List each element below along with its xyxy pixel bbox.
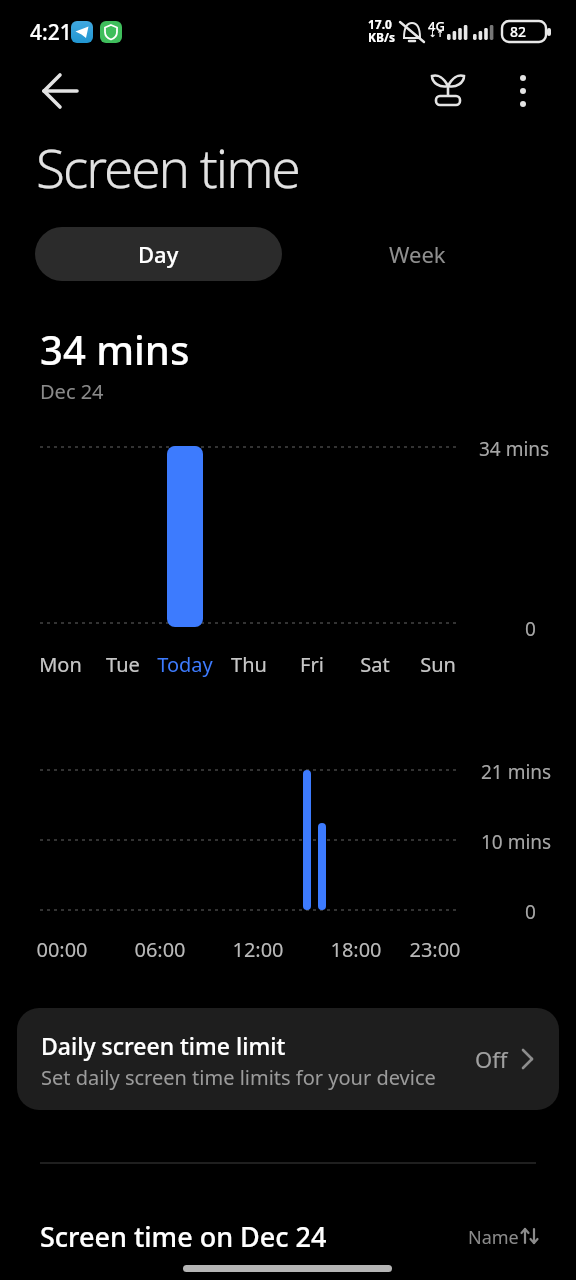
staticText: 4:21 — [30, 18, 72, 47]
button[interactable]: Week — [352, 227, 482, 281]
staticText: 00:00 — [36, 936, 88, 963]
staticText: 34 mins — [479, 436, 550, 462]
staticText: ↓↑ — [429, 29, 445, 39]
staticText: 06:00 — [134, 936, 186, 963]
staticText: Screen time — [36, 131, 299, 203]
button[interactable]: Name — [455, 1220, 547, 1252]
staticText: Sun — [420, 651, 456, 678]
staticText: Week — [389, 239, 446, 269]
button[interactable] — [30, 70, 74, 114]
staticText: 21 mins — [481, 759, 552, 785]
staticText: Name — [468, 1225, 519, 1250]
staticText: KB/s — [368, 29, 395, 45]
staticText: Day — [138, 239, 179, 269]
staticText: Off — [475, 1044, 508, 1074]
staticText: 4G — [428, 17, 445, 35]
staticText: Sat — [360, 651, 390, 678]
button[interactable] — [425, 68, 471, 114]
staticText: 18:00 — [330, 936, 382, 963]
staticText: Daily screen time limit — [41, 1030, 286, 1061]
button[interactable] — [500, 68, 546, 114]
staticText: 23:00 — [409, 936, 461, 963]
staticText: 82 — [510, 22, 527, 41]
staticText: 17.0 — [368, 16, 392, 32]
staticText: Screen time on Dec 24 — [40, 1218, 327, 1255]
staticText: Dec 24 — [40, 378, 104, 405]
staticText: Set daily screen time limits for your de… — [41, 1064, 436, 1091]
staticText: 10 mins — [481, 829, 552, 855]
staticText: 0 — [525, 899, 536, 925]
button[interactable]: Daily screen time limit — [17, 1008, 559, 1110]
staticText: Tue — [106, 651, 140, 678]
staticText: 12:00 — [232, 936, 284, 963]
staticText: Thu — [231, 651, 267, 678]
staticText: 34 mins — [40, 322, 190, 376]
button[interactable]: Day — [35, 227, 282, 281]
staticText: 0 — [525, 616, 536, 642]
staticText: Mon — [39, 651, 82, 678]
staticText: Fri — [300, 651, 324, 678]
staticText: Today — [157, 651, 213, 678]
